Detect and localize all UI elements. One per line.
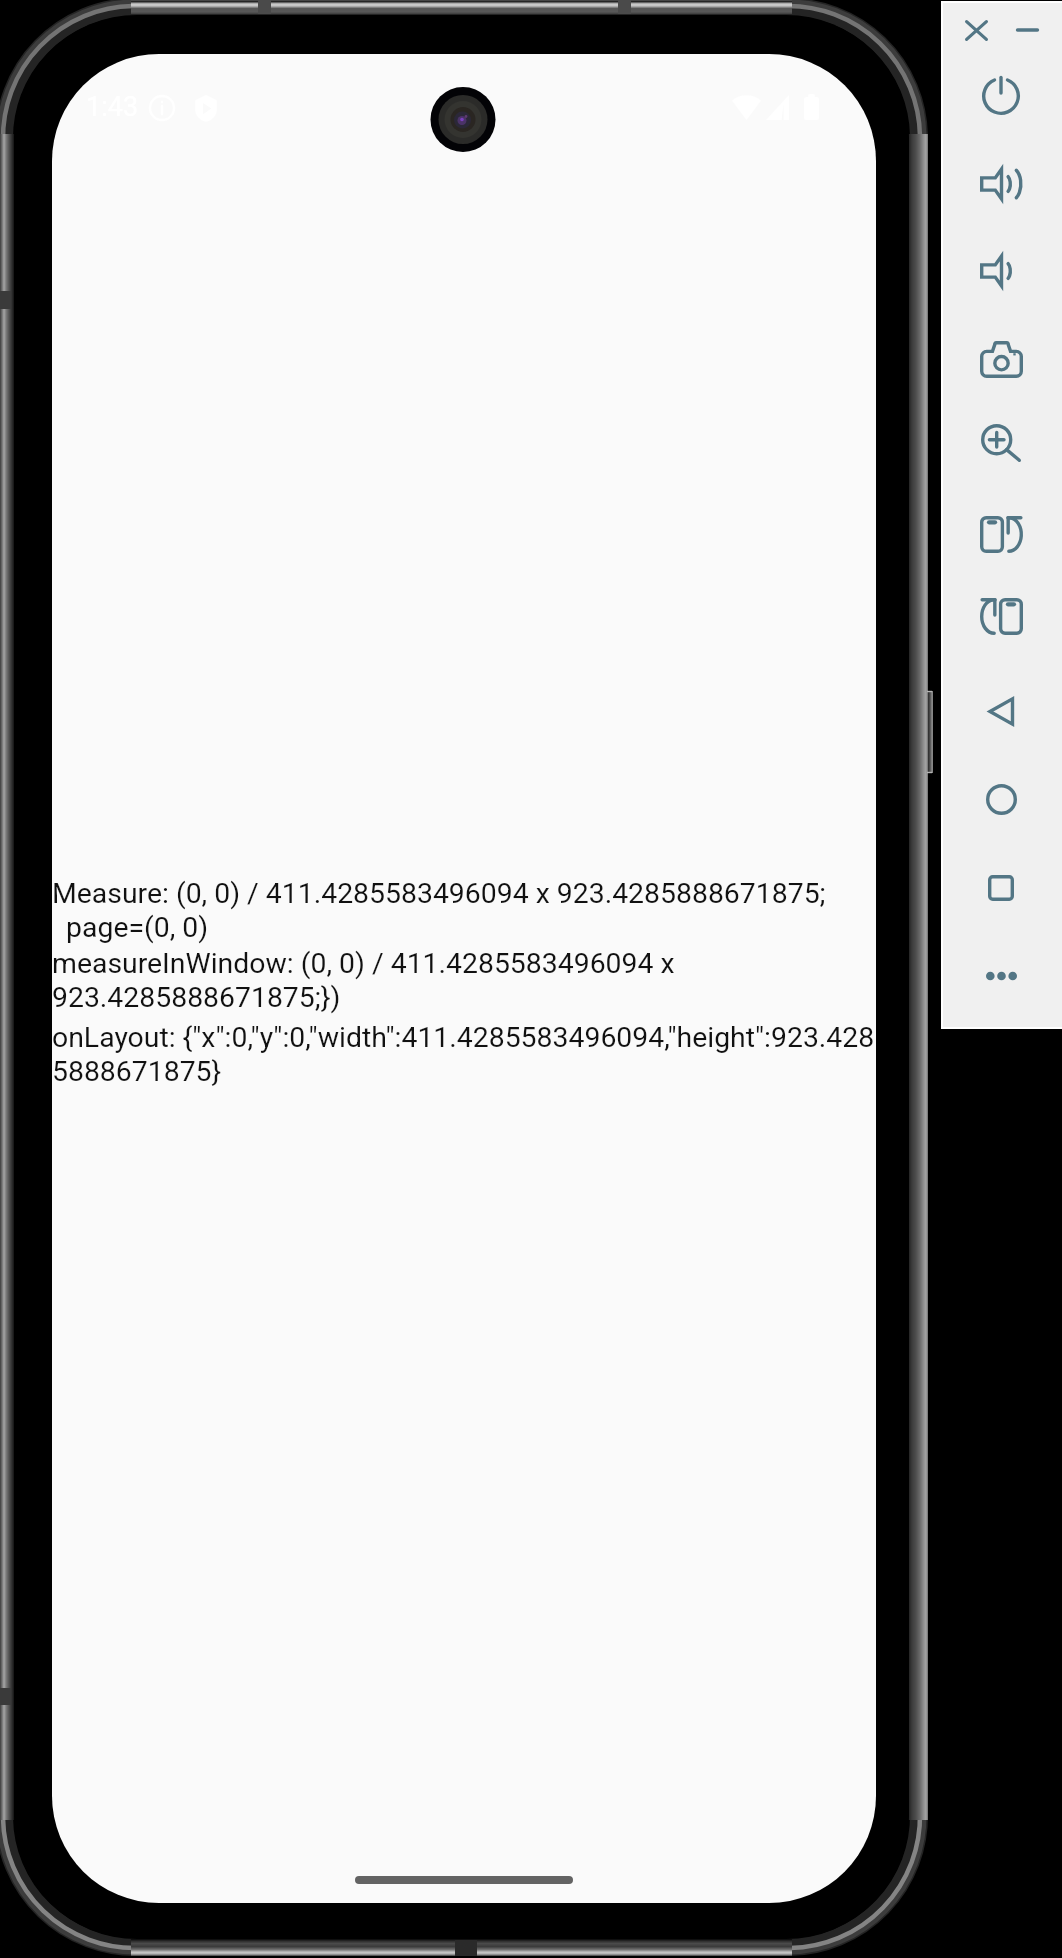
button[interactable]: Volume down bbox=[956, 235, 1046, 307]
button[interactable]: Rotate right bbox=[956, 580, 1046, 652]
button[interactable]: Volume up bbox=[956, 148, 1046, 220]
button[interactable]: Power bbox=[956, 60, 1046, 132]
staticText: measureInWindow: (0, 0) / 411.4285583496… bbox=[52, 947, 675, 1014]
button[interactable]: More bbox=[956, 940, 1046, 1012]
button[interactable]: Back bbox=[956, 675, 1046, 747]
button[interactable]: Recent apps bbox=[956, 852, 1046, 924]
button[interactable]: Take screenshot bbox=[956, 323, 1046, 395]
button[interactable]: Home bbox=[956, 763, 1046, 835]
staticText: Measure: (0, 0) / 411.4285583496094 x 92… bbox=[52, 877, 826, 944]
button[interactable]: Close bbox=[949, 6, 1003, 54]
button[interactable]: Rotate left bbox=[956, 498, 1046, 570]
button[interactable]: Minimize bbox=[1000, 6, 1054, 54]
staticText: onLayout: {"x":0,"y":0,"width":411.42855… bbox=[52, 1021, 875, 1088]
button[interactable]: Zoom bbox=[956, 407, 1046, 479]
